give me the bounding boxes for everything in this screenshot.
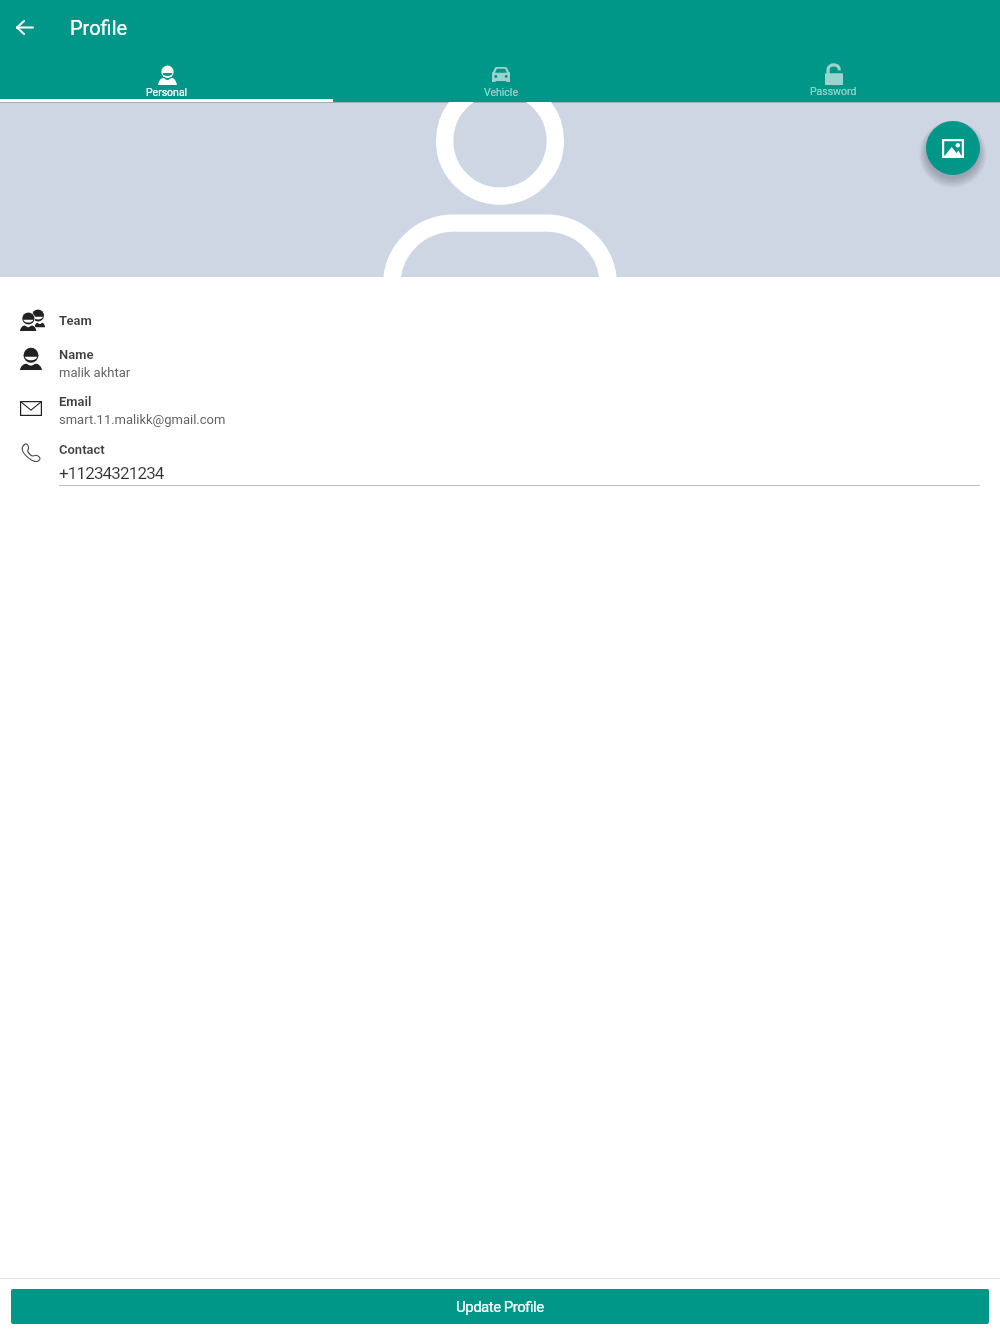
button[interactable]: Email <box>0 394 1000 442</box>
button[interactable]: Vehicle <box>334 53 667 102</box>
staticText: Email <box>59 394 92 409</box>
staticText: Password <box>810 85 857 97</box>
staticText: Name <box>59 347 94 362</box>
button[interactable]: Back <box>6 9 42 45</box>
staticText: Personal <box>146 86 188 98</box>
staticText: Team <box>59 313 92 328</box>
staticText: Vehicle <box>484 86 518 98</box>
button[interactable]: Change photo <box>926 121 980 175</box>
button[interactable]: Password <box>667 53 1000 102</box>
button[interactable]: Update Profile <box>11 1289 989 1324</box>
staticText: malik akhtar <box>59 365 131 380</box>
staticText: Profile <box>70 16 128 39</box>
button[interactable]: Contact <box>0 442 1000 492</box>
staticText: Update Profile <box>456 1298 544 1316</box>
button[interactable]: Name <box>0 347 1000 394</box>
button[interactable]: Personal <box>0 53 334 102</box>
staticText: +11234321234 <box>59 463 164 483</box>
button[interactable]: Team <box>0 302 1000 347</box>
staticText: smart.11.malikk@gmail.com <box>59 412 226 427</box>
staticText: Contact <box>59 442 105 457</box>
